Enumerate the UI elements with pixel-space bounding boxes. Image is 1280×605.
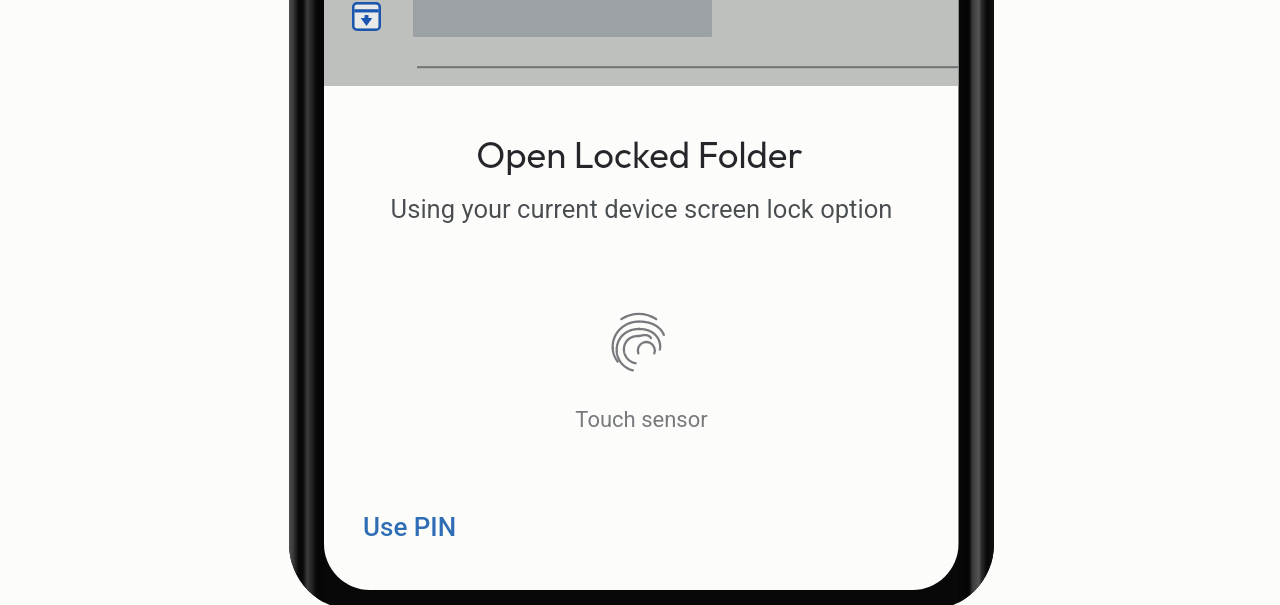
staticText: Touch sensor bbox=[324, 407, 959, 433]
button[interactable]: Archive bbox=[352, 2, 381, 31]
staticText: Using your current device screen lock op… bbox=[324, 194, 959, 224]
staticText: Use PIN bbox=[363, 512, 457, 542]
staticText: Open Locked Folder bbox=[322, 131, 957, 177]
button[interactable]: Use PIN bbox=[355, 508, 465, 546]
button[interactable]: Fingerprint sensor bbox=[612, 312, 666, 372]
